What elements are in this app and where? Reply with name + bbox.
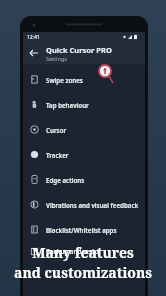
staticText: Edge actions bbox=[46, 176, 85, 184]
staticText: Many features bbox=[32, 243, 134, 262]
staticText: 12:41 bbox=[27, 34, 40, 41]
staticText: Vibrations and visual feedback bbox=[46, 201, 139, 209]
staticText: Tracker bbox=[46, 151, 69, 159]
staticText: Blacklist/Whitelist apps bbox=[46, 226, 117, 234]
button[interactable]: Backup and resto bbox=[23, 242, 145, 260]
button[interactable]: Edge actions bbox=[23, 167, 145, 192]
button[interactable]: Back bbox=[27, 46, 41, 60]
button[interactable]: Blacklist/Whitelist apps bbox=[23, 217, 145, 242]
button[interactable]: Vibrations and visual feedback bbox=[23, 192, 145, 217]
staticText: Settings bbox=[46, 55, 67, 62]
button[interactable]: Swipe zones bbox=[23, 67, 145, 92]
button[interactable]: Tap behaviour bbox=[23, 92, 145, 117]
button[interactable]: Cursor bbox=[23, 117, 145, 142]
staticText: Tap behaviour bbox=[46, 101, 89, 109]
staticText: Cursor bbox=[46, 126, 67, 134]
staticText: Swipe zones bbox=[46, 76, 83, 84]
staticText: Quick Cursor PRO bbox=[46, 45, 112, 55]
staticText: and customizations bbox=[14, 263, 152, 282]
staticText: Backup and resto bbox=[46, 247, 99, 255]
button[interactable]: Back bbox=[23, 42, 145, 64]
button[interactable]: Tracker bbox=[23, 142, 145, 167]
